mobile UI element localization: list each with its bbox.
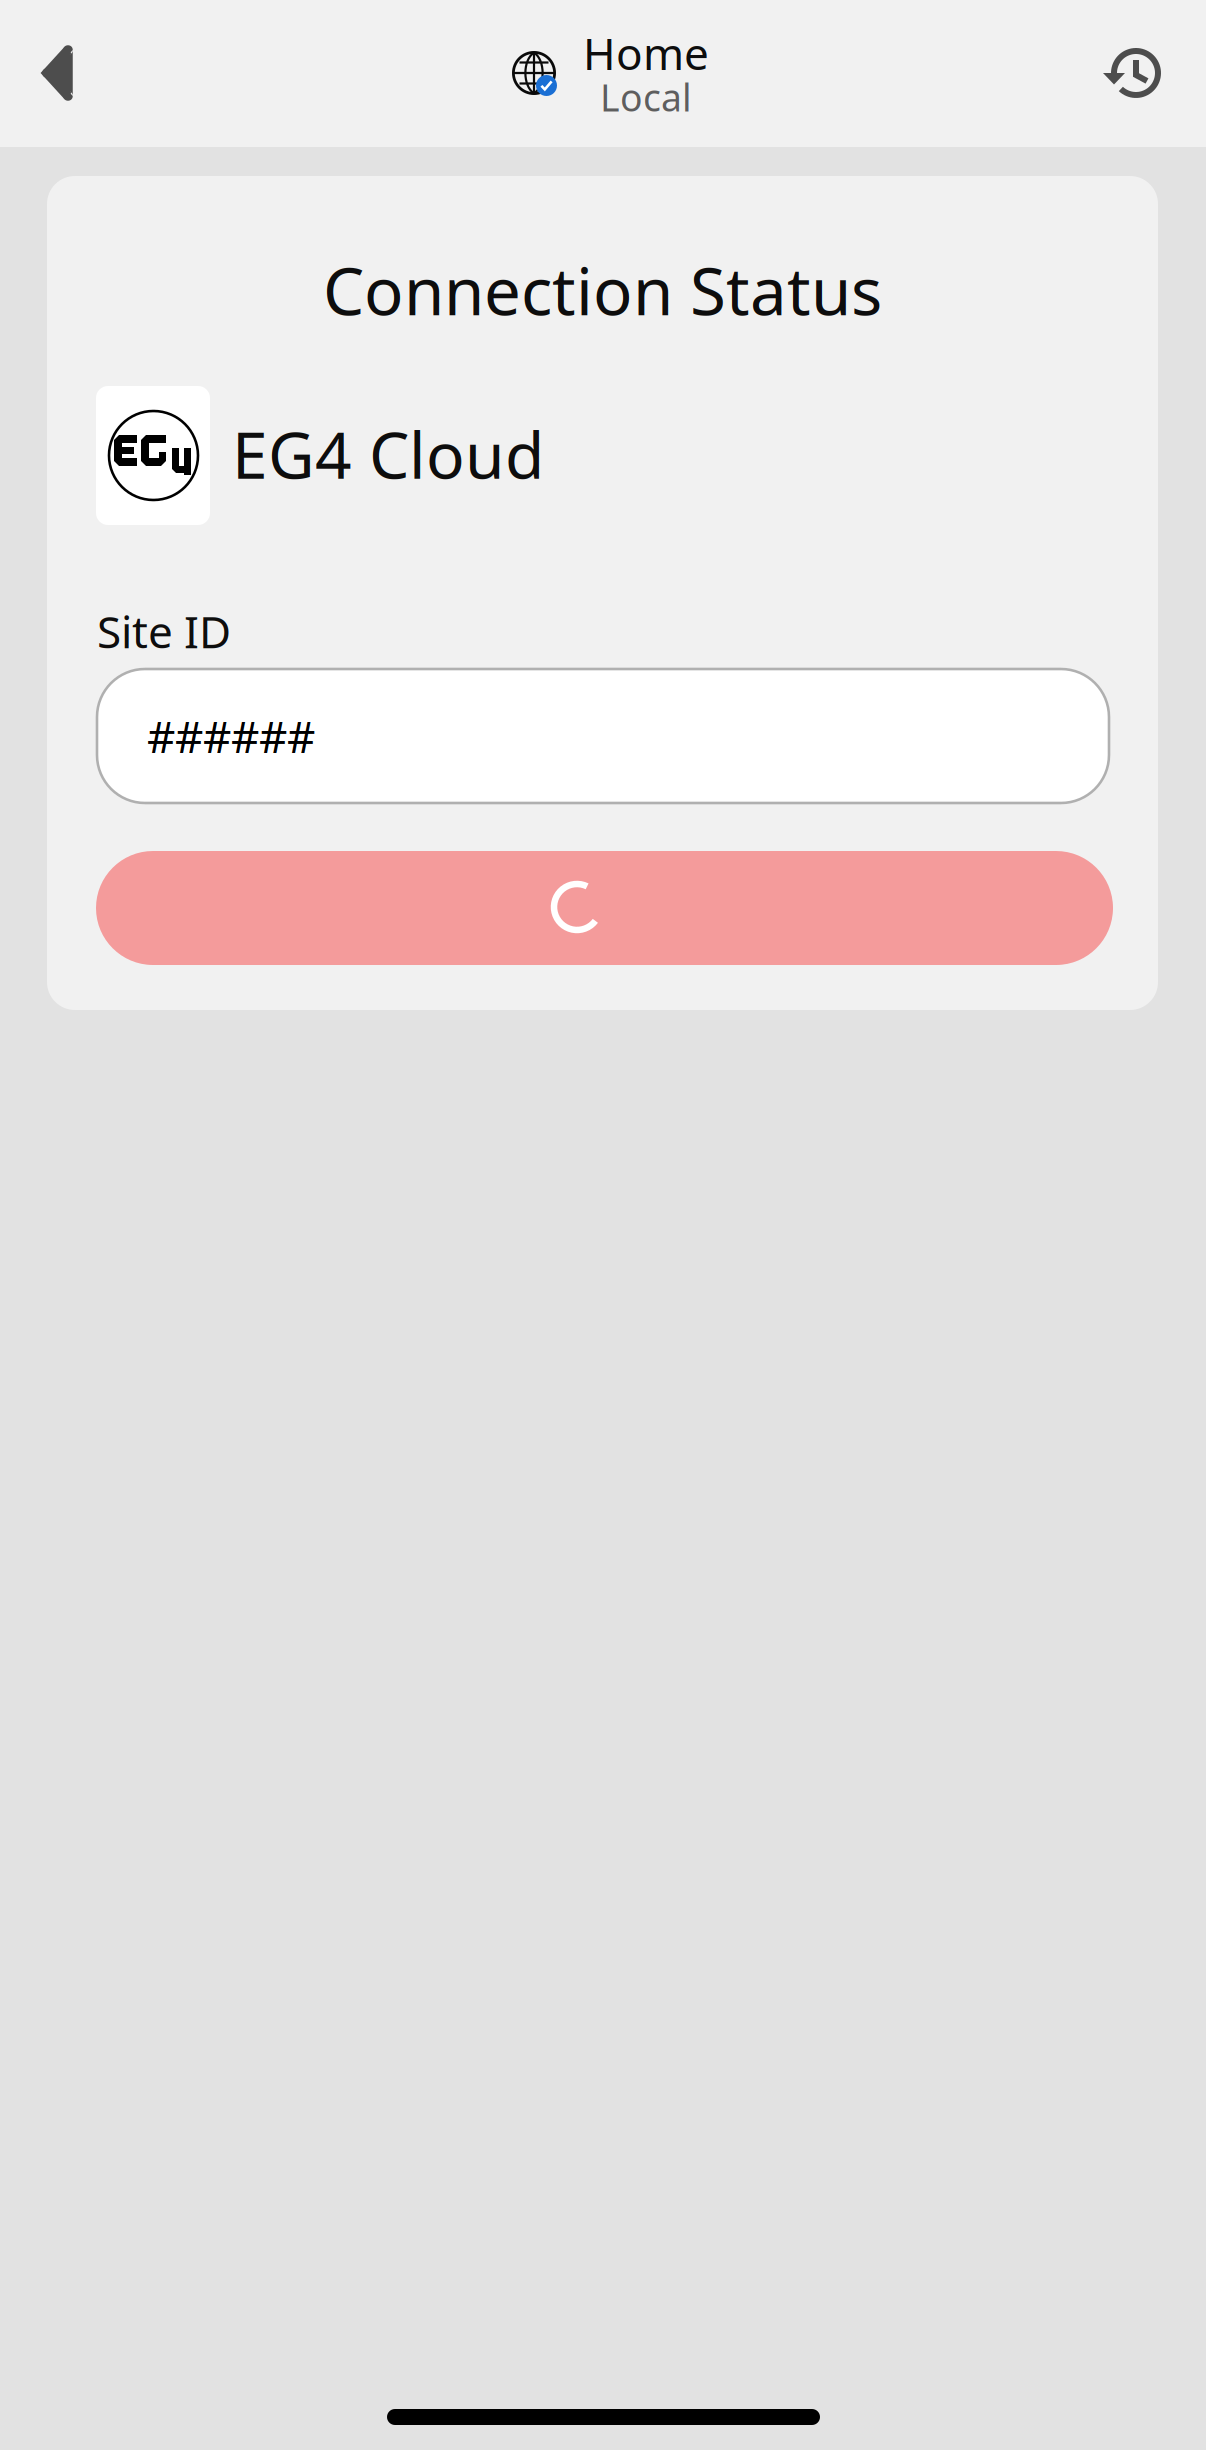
staticText: Site ID: [97, 602, 231, 660]
button[interactable]: History: [1096, 0, 1206, 147]
button[interactable]: Back: [0, 0, 110, 147]
button[interactable]: Connecting: [96, 851, 1113, 965]
button[interactable]: ######: [97, 669, 1109, 803]
staticText: Home: [583, 24, 709, 82]
staticText: EG4 Cloud: [232, 411, 544, 496]
staticText: Local: [600, 72, 692, 122]
staticText: Connection Status: [323, 247, 882, 333]
staticText: ######: [147, 707, 315, 765]
